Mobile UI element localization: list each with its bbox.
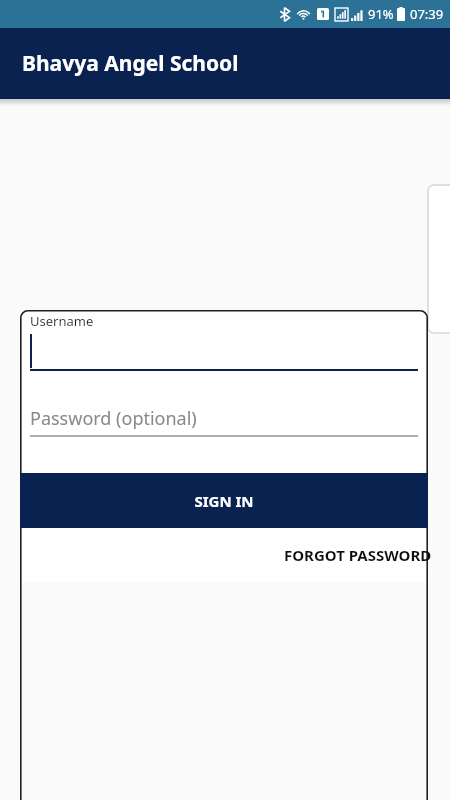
staticText: Password (optional): [30, 406, 197, 431]
staticText: 07:39: [410, 5, 444, 23]
staticText: Bhavya Angel School: [22, 49, 239, 78]
staticText: Username: [30, 312, 94, 330]
staticText: 91%: [368, 5, 394, 23]
button[interactable]: SIGN IN: [20, 473, 428, 528]
button[interactable]: FORGOT PASSWORD: [20, 528, 428, 582]
button[interactable]: Username: [20, 310, 428, 473]
staticText: SIGN IN: [194, 491, 254, 511]
staticText: FORGOT PASSWORD: [284, 545, 432, 565]
